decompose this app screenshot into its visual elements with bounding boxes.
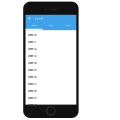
staticText: Item 12: [28, 47, 36, 51]
staticText: Item 14: [28, 61, 36, 65]
staticText: Item 15: [28, 68, 36, 72]
staticText: Item 17: [28, 82, 36, 86]
staticText: Item 20: [28, 103, 36, 107]
staticText: Books: [34, 17, 42, 20]
button[interactable]: Item 13: [25, 52, 76, 59]
button[interactable]: Item 10: [25, 31, 76, 38]
button[interactable]: Store: [59, 22, 76, 30]
staticText: Mine: [31, 24, 36, 26]
button[interactable]: Item 15: [25, 66, 76, 73]
button[interactable]: Item 18: [25, 87, 76, 94]
staticText: New: [49, 24, 52, 26]
staticText: Item 19: [28, 96, 36, 100]
staticText: Store: [65, 24, 70, 26]
button[interactable]: Item 11: [25, 38, 76, 45]
staticText: Item 11: [28, 40, 36, 44]
button[interactable]: Item 17: [25, 80, 76, 87]
button[interactable]: Item 20: [25, 101, 76, 108]
button[interactable]: Item 12: [25, 45, 76, 52]
staticText: Item 18: [28, 89, 36, 93]
button[interactable]: New: [42, 22, 59, 30]
staticText: Item 16: [28, 75, 36, 79]
button[interactable]: Item 19: [25, 94, 76, 101]
button[interactable]: Item 14: [25, 59, 76, 66]
staticText: Item 10: [28, 33, 36, 37]
button[interactable]: Back: [27, 15, 31, 22]
staticText: Item 13: [28, 54, 36, 58]
button[interactable]: Item 16: [25, 73, 76, 80]
button[interactable]: Mine: [25, 22, 42, 30]
